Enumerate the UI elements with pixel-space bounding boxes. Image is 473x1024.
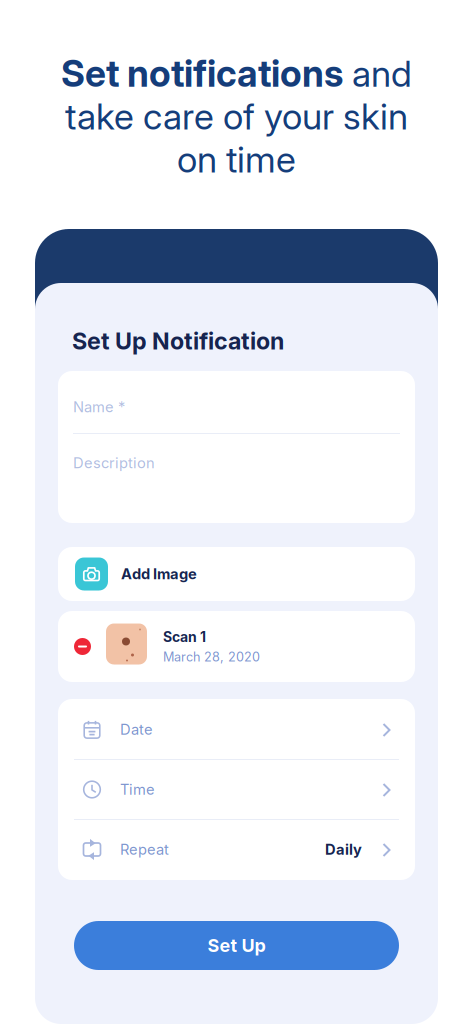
staticText: Set Up Notification — [72, 327, 284, 355]
staticText: March 28, 2020 — [163, 649, 260, 665]
staticText: Repeat — [120, 841, 169, 858]
staticText: Set notifications and — [61, 52, 412, 95]
button[interactable]: Add Image — [58, 547, 415, 601]
button[interactable]: Time — [58, 760, 415, 819]
staticText: Scan 1 — [163, 628, 206, 645]
staticText: on time — [177, 138, 296, 181]
button[interactable]: Remove scan — [74, 638, 91, 655]
staticText: take care of your skin — [65, 95, 408, 138]
button[interactable]: Repeat — [58, 820, 415, 879]
staticText: Time — [120, 781, 155, 798]
staticText: Add Image — [121, 565, 197, 583]
staticText: Daily — [325, 841, 362, 858]
staticText: Name * — [73, 398, 125, 416]
button[interactable]: Date — [58, 700, 415, 759]
staticText: Date — [120, 721, 153, 738]
staticText: Description — [73, 454, 155, 472]
button[interactable]: Set Up — [74, 921, 399, 970]
staticText: Set Up — [207, 935, 265, 956]
